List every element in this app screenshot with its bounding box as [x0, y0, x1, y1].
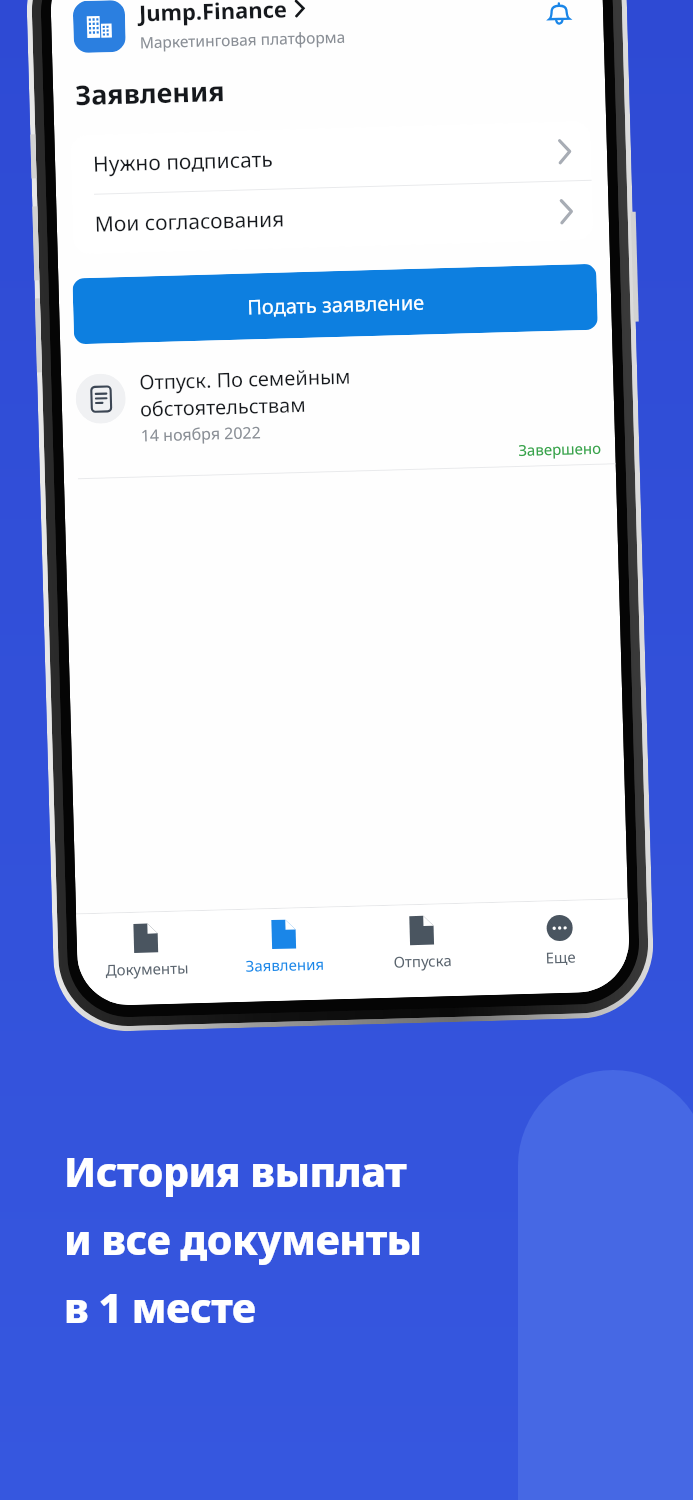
button[interactable]: Отпуска [352, 903, 492, 999]
button[interactable]: Jump.Finance [51, 0, 604, 55]
button[interactable]: Заявления [214, 907, 354, 1003]
staticText: Еще [545, 947, 577, 967]
button[interactable]: Еще [490, 899, 630, 995]
staticText: Подать заявление [247, 289, 424, 320]
button[interactable]: Нужно подписать [70, 121, 592, 195]
staticText: обстоятельствам [140, 391, 306, 422]
staticText: 14 ноября 2022 [140, 421, 261, 446]
staticText: Отпуска [393, 950, 453, 972]
staticText: Завершено [518, 438, 601, 460]
button[interactable]: Подать заявление [72, 264, 598, 344]
staticText: История выплат [64, 1143, 407, 1199]
button[interactable]: Уведомления [536, 0, 582, 36]
staticText: Заявления [75, 72, 226, 113]
staticText: Отпуск. По семейным [139, 363, 352, 396]
staticText: Заявления [245, 954, 325, 976]
staticText: Мои согласования [94, 197, 560, 239]
staticText: Jump.Finance [138, 0, 288, 27]
staticText: Документы [105, 957, 189, 980]
button[interactable]: Документы [76, 911, 217, 1006]
staticText: Маркетинговая платформа [139, 26, 346, 52]
button[interactable]: Мои согласования [72, 181, 593, 254]
staticText: Нужно подписать [93, 137, 558, 179]
button[interactable]: Отпуск. По семейным [61, 355, 616, 480]
staticText: в 1 месте [64, 1279, 256, 1335]
staticText: и все документы [64, 1211, 422, 1267]
